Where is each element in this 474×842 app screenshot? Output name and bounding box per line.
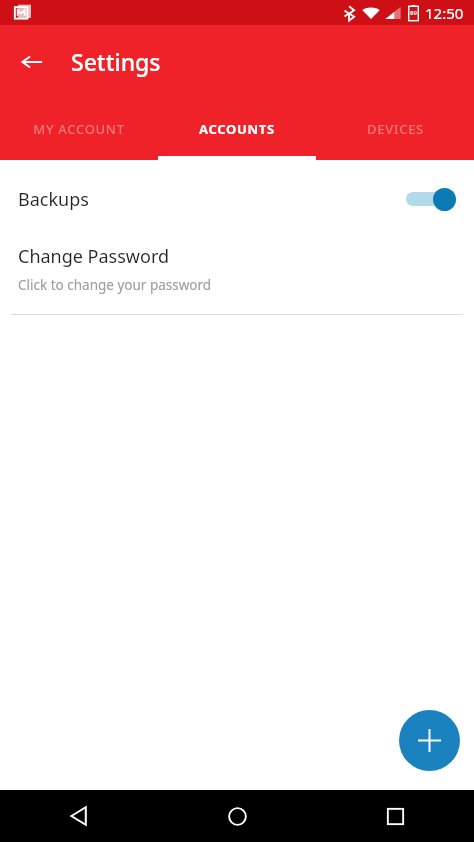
button[interactable]: Add [399, 710, 460, 771]
button[interactable]: Navigate up [8, 38, 56, 86]
button[interactable]: Back [0, 790, 158, 842]
button[interactable]: Change Password [0, 238, 474, 314]
button[interactable]: Backups switch, on [404, 182, 456, 216]
staticText: Click to change your password [18, 276, 212, 294]
staticText: Settings [71, 46, 161, 77]
button[interactable]: ACCOUNTS [158, 98, 316, 160]
staticText: MY ACCOUNT [33, 120, 125, 138]
button[interactable]: Home [158, 790, 316, 842]
button[interactable]: Recents [316, 790, 474, 842]
staticText: DEVICES [367, 120, 424, 138]
button[interactable]: Backups [0, 160, 474, 238]
staticText: 89 [410, 9, 417, 17]
staticText: ACCOUNTS [199, 120, 275, 138]
button[interactable]: MY ACCOUNT [0, 98, 158, 160]
staticText: Backups [18, 187, 404, 212]
staticText: Change Password [18, 244, 170, 269]
staticText: 12:50 [425, 3, 464, 23]
button[interactable]: DEVICES [316, 98, 474, 160]
